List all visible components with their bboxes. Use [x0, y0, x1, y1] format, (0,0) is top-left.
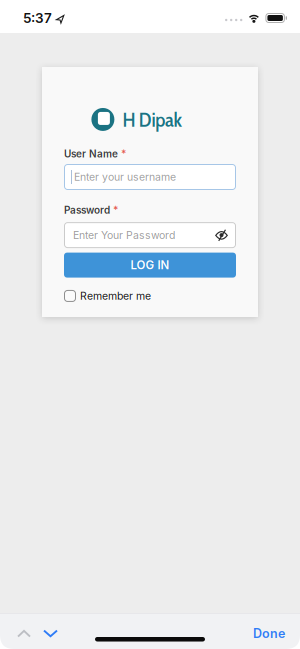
staticText: * [113, 204, 118, 216]
staticText: LOG IN [130, 258, 169, 272]
button[interactable]: Next field [43, 630, 58, 637]
button[interactable]: LOG IN [64, 253, 236, 278]
staticText: User Name [64, 148, 118, 160]
button[interactable]: Done [253, 626, 285, 641]
staticText: Done [253, 626, 285, 641]
staticText: 5:37 [23, 10, 52, 26]
button[interactable]: Remember me [64, 290, 151, 302]
button[interactable]: Enter your username [64, 164, 236, 190]
staticText: * [121, 148, 126, 160]
staticText: Enter Your Password [73, 229, 175, 241]
staticText: Enter your username [74, 171, 176, 183]
staticText: H Dipak [122, 107, 183, 132]
button[interactable]: Previous field [17, 630, 31, 637]
staticText: Password [64, 204, 110, 216]
button[interactable]: Show password [215, 229, 228, 242]
staticText: Remember me [80, 290, 151, 302]
button[interactable]: Enter Your Password [64, 222, 236, 248]
